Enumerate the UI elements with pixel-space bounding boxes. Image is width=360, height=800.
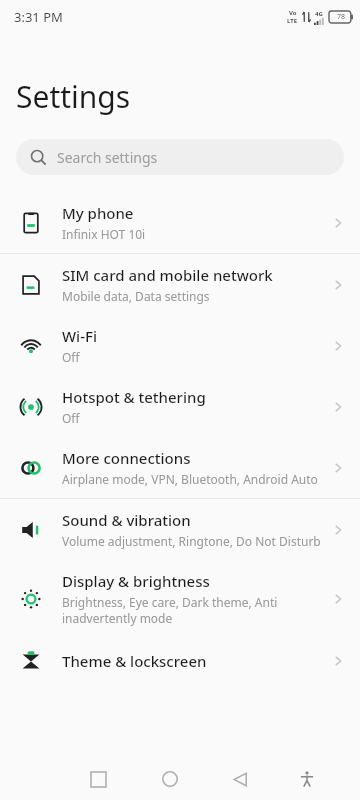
staticText: LTE — [287, 17, 298, 25]
button[interactable]: Search settings — [16, 139, 344, 175]
button[interactable]: Display & brightness — [0, 560, 360, 637]
button[interactable]: More connections — [0, 437, 360, 498]
staticText: Search settings — [57, 148, 158, 167]
button[interactable]: My phone — [0, 192, 360, 253]
button[interactable]: Accessibility — [276, 758, 337, 800]
staticText: Sound & vibration — [62, 510, 191, 530]
staticText: Display & brightness — [62, 571, 210, 591]
button[interactable]: Hotspot & tethering — [0, 376, 360, 437]
button[interactable]: Theme & lockscreen — [0, 637, 360, 685]
button[interactable]: Wi-Fi — [0, 315, 360, 376]
staticText: More connections — [62, 448, 191, 468]
staticText: Volume adjustment, Ringtone, Do Not Dist… — [62, 533, 321, 549]
staticText: Theme & lockscreen — [62, 651, 207, 671]
button[interactable]: Back — [205, 758, 276, 800]
staticText: Mobile data, Data settings — [62, 288, 210, 304]
staticText: 4G — [315, 10, 323, 18]
staticText: Wi-Fi — [62, 326, 97, 346]
staticText: 3:31 PM — [14, 8, 63, 26]
staticText: Brightness, Eye care, Dark theme, Anti i… — [62, 594, 278, 626]
staticText: Off — [62, 410, 80, 426]
staticText: Off — [62, 349, 80, 365]
staticText: 78 — [337, 12, 346, 22]
staticText: Vo — [289, 9, 297, 17]
staticText: SIM card and mobile network — [62, 265, 273, 285]
staticText: Hotspot & tethering — [62, 387, 206, 407]
button[interactable]: Home — [134, 758, 205, 800]
button[interactable]: Sound & vibration — [0, 499, 360, 560]
staticText: My phone — [62, 203, 134, 223]
button[interactable]: Recent apps — [63, 758, 134, 800]
staticText: Infinix HOT 10i — [62, 226, 146, 242]
staticText: Airplane mode, VPN, Bluetooth, Android A… — [62, 471, 318, 487]
button[interactable]: SIM card and mobile network — [0, 254, 360, 315]
staticText: Settings — [16, 76, 131, 117]
